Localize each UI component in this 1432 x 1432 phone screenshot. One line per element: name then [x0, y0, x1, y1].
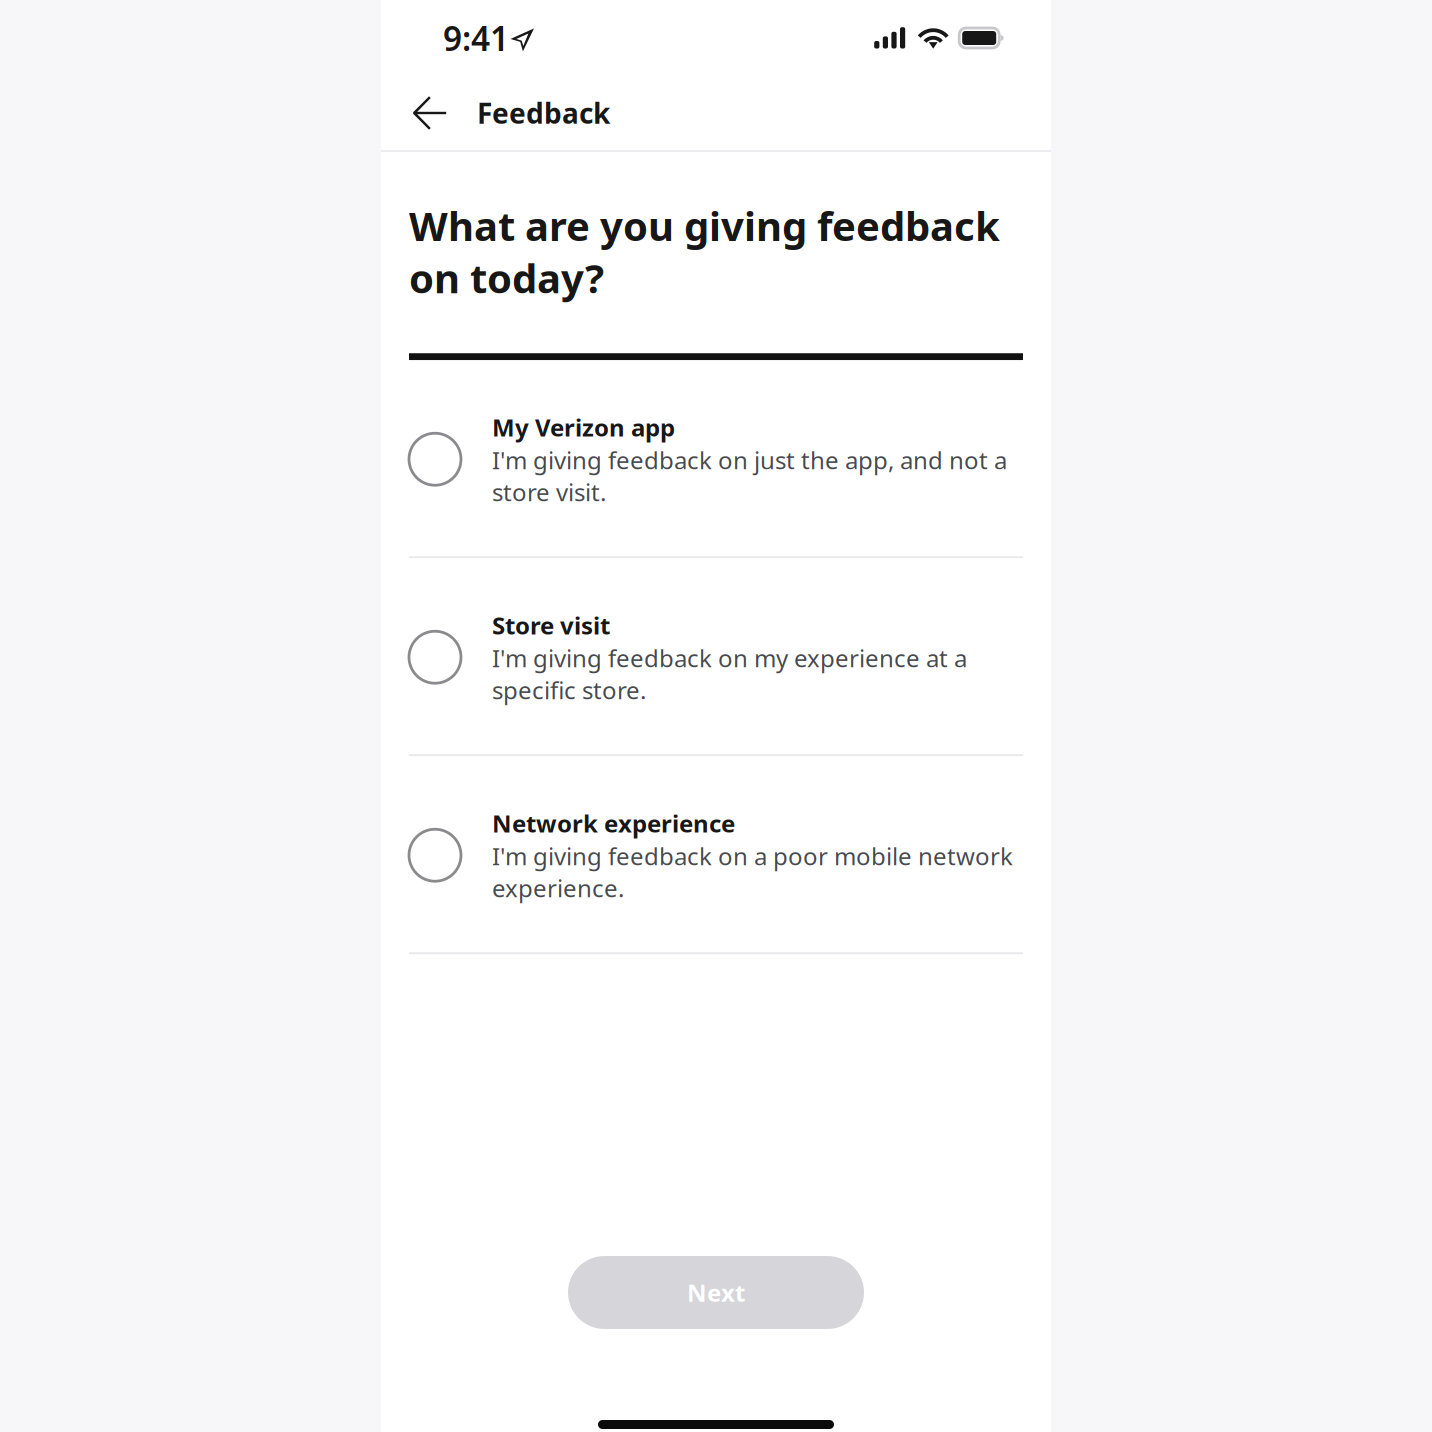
- staticText: I'm giving feedback on my experience at …: [492, 642, 967, 706]
- staticText: Next: [687, 1277, 745, 1308]
- button[interactable]: Back: [412, 76, 470, 150]
- staticText: Store visit: [492, 609, 610, 641]
- staticText: I'm giving feedback on a poor mobile net…: [492, 840, 1013, 904]
- staticText: My Verizon app: [492, 411, 675, 443]
- staticText: I'm giving feedback on just the app, and…: [492, 444, 1007, 508]
- button[interactable]: Store visit: [409, 558, 1023, 756]
- button[interactable]: Next: [568, 1256, 864, 1329]
- button[interactable]: Network experience: [409, 756, 1023, 954]
- button[interactable]: My Verizon app: [409, 360, 1023, 558]
- staticText: on today?: [409, 251, 604, 304]
- staticText: Feedback: [477, 94, 610, 132]
- staticText: 9:41: [443, 16, 509, 60]
- staticText: What are you giving feedback: [409, 199, 1000, 252]
- staticText: Network experience: [492, 807, 735, 839]
